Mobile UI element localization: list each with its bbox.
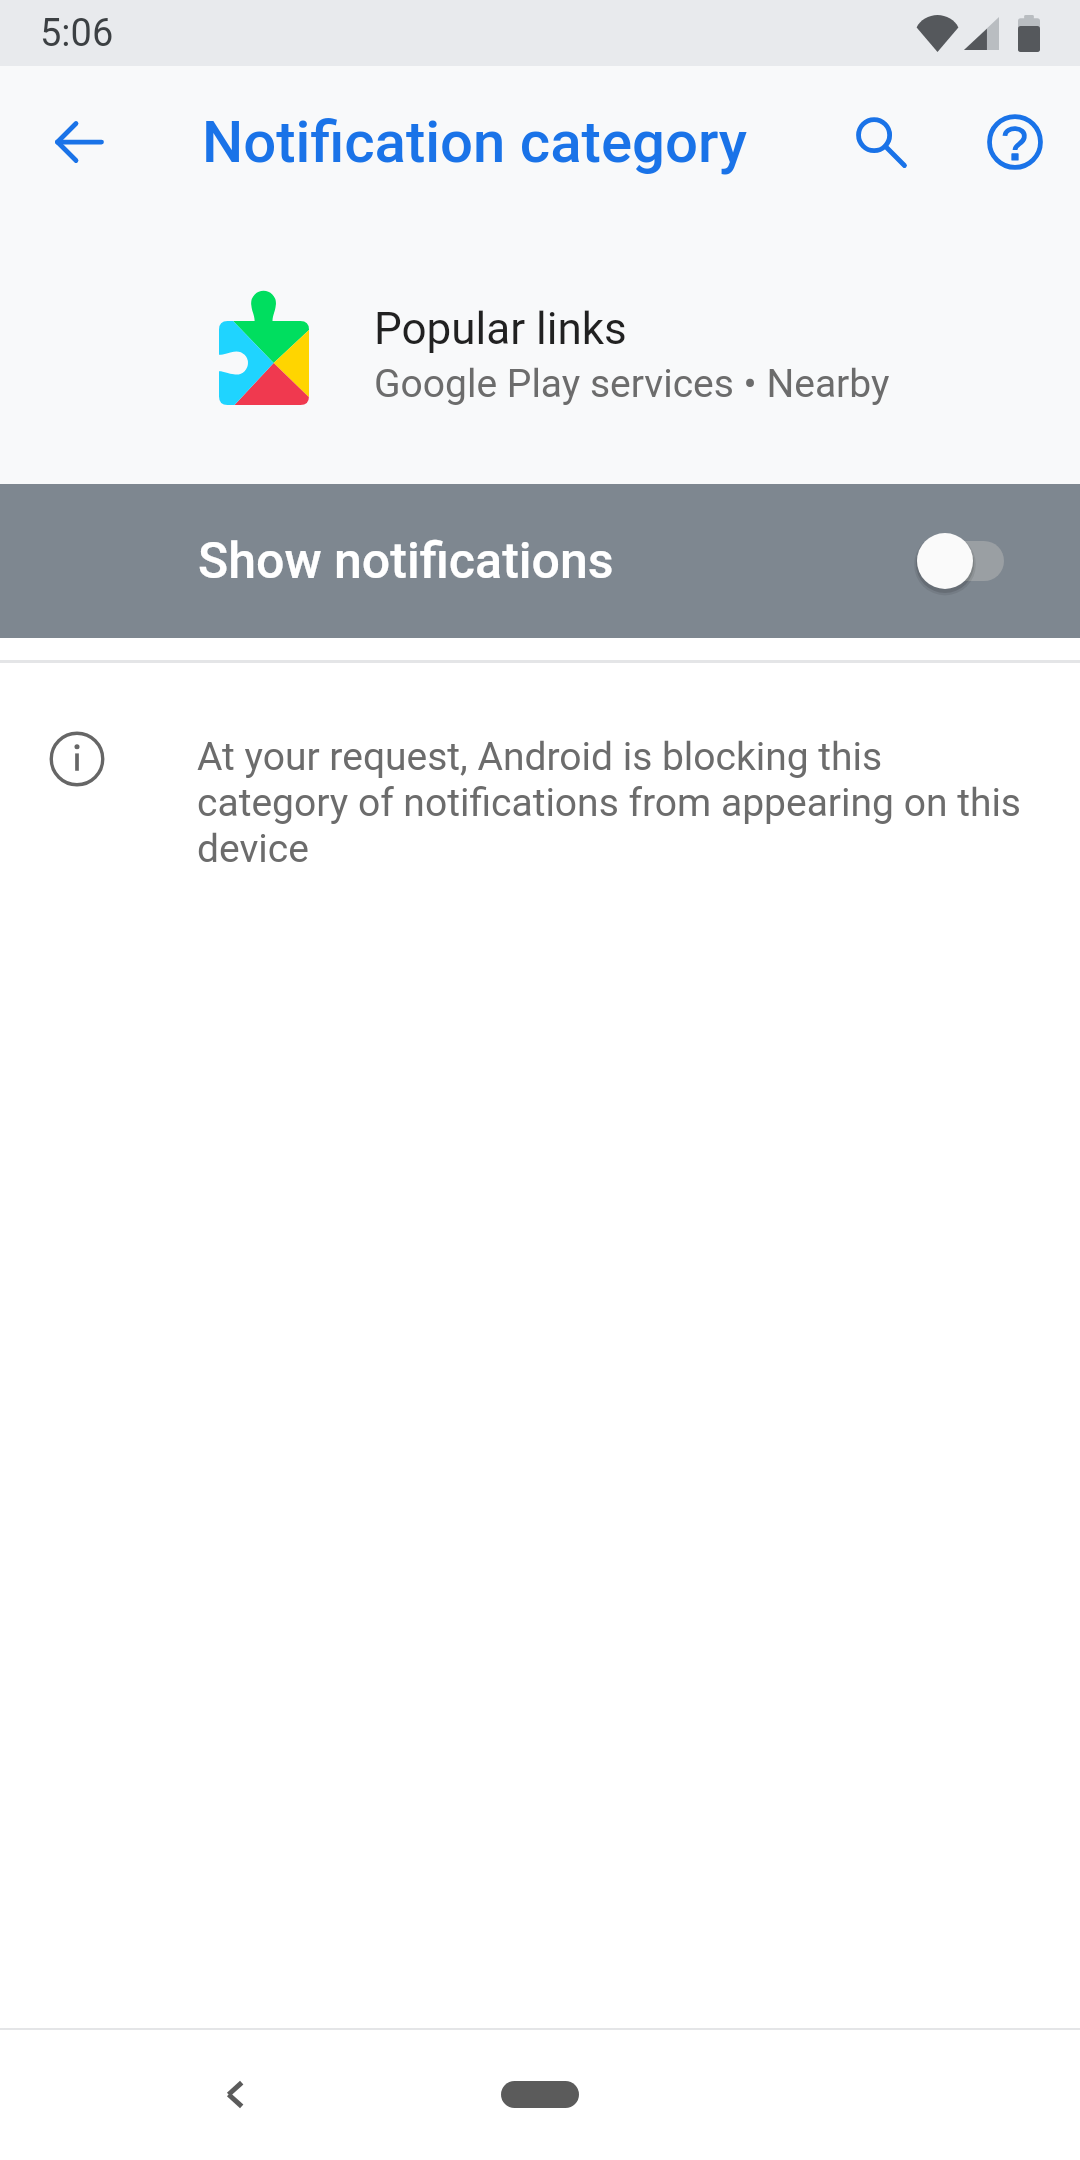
- button[interactable]: Show notifications: [0, 484, 1080, 638]
- staticText: Notification category: [202, 108, 748, 176]
- button[interactable]: Search: [825, 86, 937, 198]
- button[interactable]: Help: [959, 86, 1071, 198]
- button[interactable]: Back: [179, 2038, 291, 2150]
- staticText: At your request, Android is blocking thi…: [197, 734, 1037, 872]
- staticText: Popular links: [374, 303, 627, 355]
- button[interactable]: Navigate up: [23, 86, 135, 198]
- staticText: Show notifications: [198, 532, 614, 591]
- button[interactable]: Home: [460, 2038, 620, 2150]
- staticText: 5:06: [40, 11, 114, 56]
- staticText: Google Play services • Nearby: [374, 361, 890, 407]
- button[interactable]: Popular links: [0, 222, 1080, 484]
